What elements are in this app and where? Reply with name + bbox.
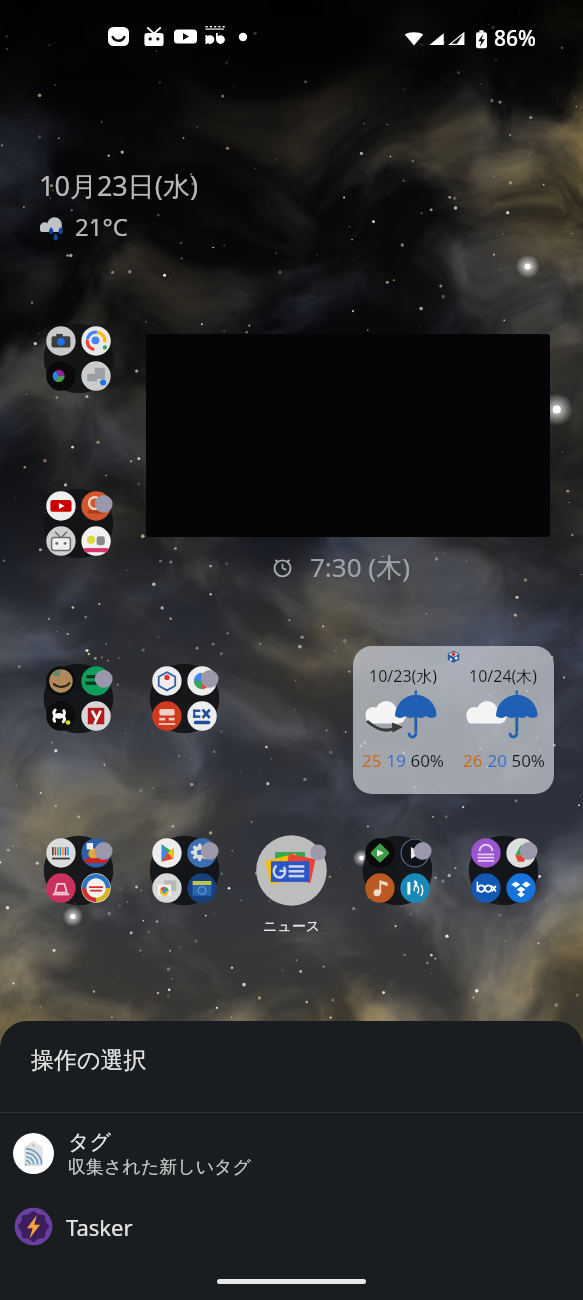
staticText: ニュース <box>256 918 327 936</box>
button[interactable]: Folder <box>43 663 114 734</box>
staticText: 収集された新しいタグ <box>68 1156 251 1179</box>
staticText: 26 <box>463 749 483 772</box>
button[interactable]: タグ <box>0 1113 583 1194</box>
staticText: 60% <box>406 749 444 772</box>
button[interactable]: ニュース <box>256 835 327 906</box>
staticText: 20 <box>483 749 507 772</box>
staticText: 10月23日(水) <box>39 167 198 204</box>
staticText: 86% <box>494 24 536 53</box>
staticText: 操作の選択 <box>31 1046 147 1075</box>
button[interactable]: Folder <box>43 323 114 394</box>
button[interactable]: Folder <box>362 835 433 906</box>
button[interactable]: Tasker <box>0 1197 583 1256</box>
staticText: 10/23(水) <box>369 665 438 687</box>
button[interactable]: 10/23(水) <box>353 646 554 794</box>
staticText: タグ <box>68 1129 111 1155</box>
button[interactable]: Folder <box>43 835 114 906</box>
staticText: Tasker <box>66 1212 133 1242</box>
staticText: 7:30 (木) <box>310 549 410 585</box>
staticText: 21°C <box>75 210 128 243</box>
staticText: 19 <box>382 749 406 772</box>
button[interactable]: Folder <box>43 488 114 559</box>
staticText: 25 <box>362 749 382 772</box>
button[interactable]: Folder <box>149 663 220 734</box>
staticText: 50% <box>507 749 545 772</box>
staticText: 10/24(木) <box>469 665 538 687</box>
button[interactable]: Folder <box>468 835 539 906</box>
button[interactable]: Folder <box>149 835 220 906</box>
